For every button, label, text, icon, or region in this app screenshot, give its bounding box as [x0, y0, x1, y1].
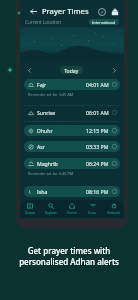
staticText: Get prayer times with personalised Adhan… [19, 245, 119, 267]
staticText: Dhuhr [37, 127, 53, 134]
button[interactable]: Home [61, 200, 82, 218]
staticText: Quran [25, 210, 36, 215]
button[interactable]: Next day [110, 66, 119, 75]
button[interactable]: Mosque [109, 6, 120, 17]
staticText: Reminder set for 6:40 PM [28, 171, 74, 176]
staticText: Isha [37, 188, 48, 195]
staticText: International [92, 20, 116, 25]
button[interactable]: International [89, 19, 119, 25]
staticText: 08:16 PM [86, 188, 109, 195]
button[interactable]: Sunrise [24, 107, 120, 118]
button[interactable]: Maghrib [24, 158, 120, 169]
button[interactable]: Back [28, 6, 39, 17]
staticText: 04:01 AM [86, 81, 109, 88]
button[interactable]: Qibla compass [96, 6, 107, 17]
staticText: 12:15 PM [86, 127, 109, 134]
staticText: Duas [88, 210, 97, 215]
staticText: Tasbeeh [107, 210, 121, 215]
staticText: Maghrib [37, 160, 58, 167]
staticText: Today [64, 67, 79, 74]
staticText: 06:24 PM [86, 160, 109, 167]
staticText: Asr [37, 143, 45, 150]
staticText: Reminder set for 3:45 AM [28, 92, 74, 97]
button[interactable]: Previous day [25, 66, 34, 75]
staticText: 06:01 AM [86, 109, 109, 116]
staticText: Current Location [25, 19, 62, 25]
button[interactable]: Dhuhr [24, 125, 120, 136]
button[interactable]: Quran [20, 200, 40, 218]
button[interactable]: Explore [40, 200, 61, 218]
button[interactable]: Tasbeeh [103, 200, 124, 218]
button[interactable]: Asr [24, 141, 120, 152]
button[interactable]: Today [60, 66, 83, 74]
staticText: Prayer Times [42, 6, 89, 16]
staticText: 03:33 PM [86, 143, 109, 150]
button[interactable]: Fajr [24, 79, 120, 90]
button[interactable]: Isha [24, 186, 120, 197]
button[interactable]: Duas [82, 200, 103, 218]
staticText: Fajr [37, 81, 47, 88]
staticText: Explore [45, 210, 57, 215]
staticText: Home [67, 210, 77, 215]
staticText: Sunrise [37, 109, 56, 116]
